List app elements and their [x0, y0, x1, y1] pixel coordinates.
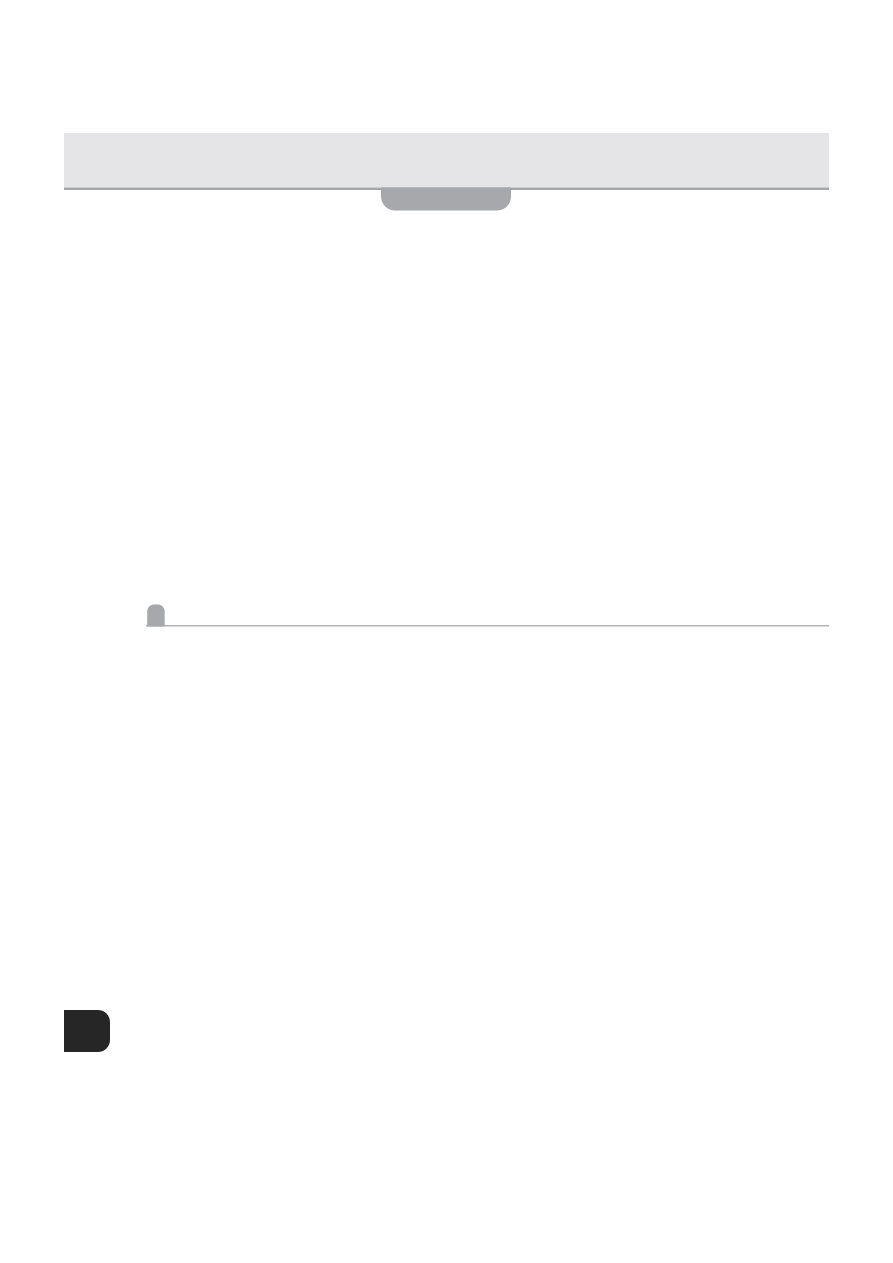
button[interactable]: Action [64, 1010, 110, 1052]
button[interactable]: Header [64, 133, 829, 187]
button[interactable]: Menu [381, 150, 511, 210]
